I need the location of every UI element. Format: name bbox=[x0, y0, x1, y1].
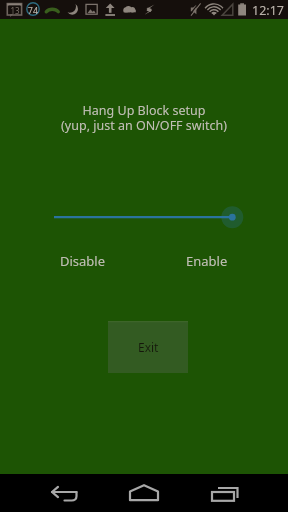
button[interactable]: Disable bbox=[60, 252, 106, 270]
button[interactable]: Enable bbox=[186, 252, 228, 270]
button[interactable]: Back bbox=[30, 474, 96, 512]
button[interactable]: Recent apps bbox=[192, 474, 258, 512]
staticText: 13 bbox=[9, 5, 21, 15]
staticText: Exit bbox=[138, 339, 159, 355]
staticText: 74 bbox=[27, 4, 39, 15]
button[interactable]: Exit bbox=[108, 321, 188, 373]
staticText: Hang Up Block setup bbox=[44, 102, 244, 120]
staticText: (yup, just an ON/OFF switch) bbox=[44, 117, 244, 135]
staticText: 12:17 bbox=[252, 2, 284, 19]
button[interactable]: Home bbox=[111, 474, 177, 512]
